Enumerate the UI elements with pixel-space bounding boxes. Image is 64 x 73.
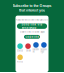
staticText: Status [17,49,23,52]
staticText: that interest you [19,8,45,12]
button[interactable]: Copy link [24,35,40,39]
button[interactable]: Notes [16,54,24,63]
staticText: Copy link [25,35,38,38]
button[interactable]: Gmail [24,43,32,52]
staticText: Messenger [40,48,47,53]
staticText: Facebook [32,48,39,53]
staticText: Notes [17,61,23,63]
button[interactable]: Send link via WhatsApp [17,23,47,29]
staticText: Anyone with the link can join [15,18,48,21]
button[interactable]: Facebook [32,42,40,53]
button[interactable]: Messenger [40,42,48,53]
staticText: Send link via WhatsApp [21,23,42,29]
staticText: Gmail [26,49,30,52]
button[interactable]: Status [16,43,24,52]
staticText: Share link in other apps [19,30,44,33]
staticText: Subscribe to the Groups [12,4,51,8]
